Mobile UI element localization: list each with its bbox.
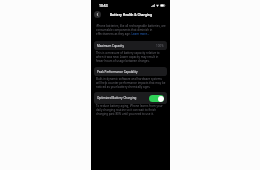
staticText: To reduce battery aging, iPhone learns f… — [96, 104, 166, 116]
staticText: Optimized Battery Charging — [97, 96, 137, 100]
button[interactable]: Optimized Battery Charging — [149, 95, 164, 102]
staticText: Battery Health & Charging — [110, 13, 152, 17]
staticText: Maximum Capacity — [97, 44, 124, 48]
staticText: 100% — [156, 44, 164, 48]
button[interactable]: Maximum Capacity — [94, 41, 167, 50]
button[interactable]: Back — [94, 11, 101, 18]
staticText: This is a measure of battery capacity re… — [96, 51, 166, 63]
staticText: Built-in dynamic software and hardware s… — [96, 77, 166, 89]
staticText: 10:53 — [99, 3, 108, 8]
button[interactable]: Optimized Battery Charging — [94, 92, 167, 104]
staticText: iPhone batteries, like all rechargeable … — [96, 24, 166, 36]
staticText: Peak Performance Capability — [97, 70, 138, 74]
button[interactable]: Peak Performance Capability — [94, 67, 167, 76]
